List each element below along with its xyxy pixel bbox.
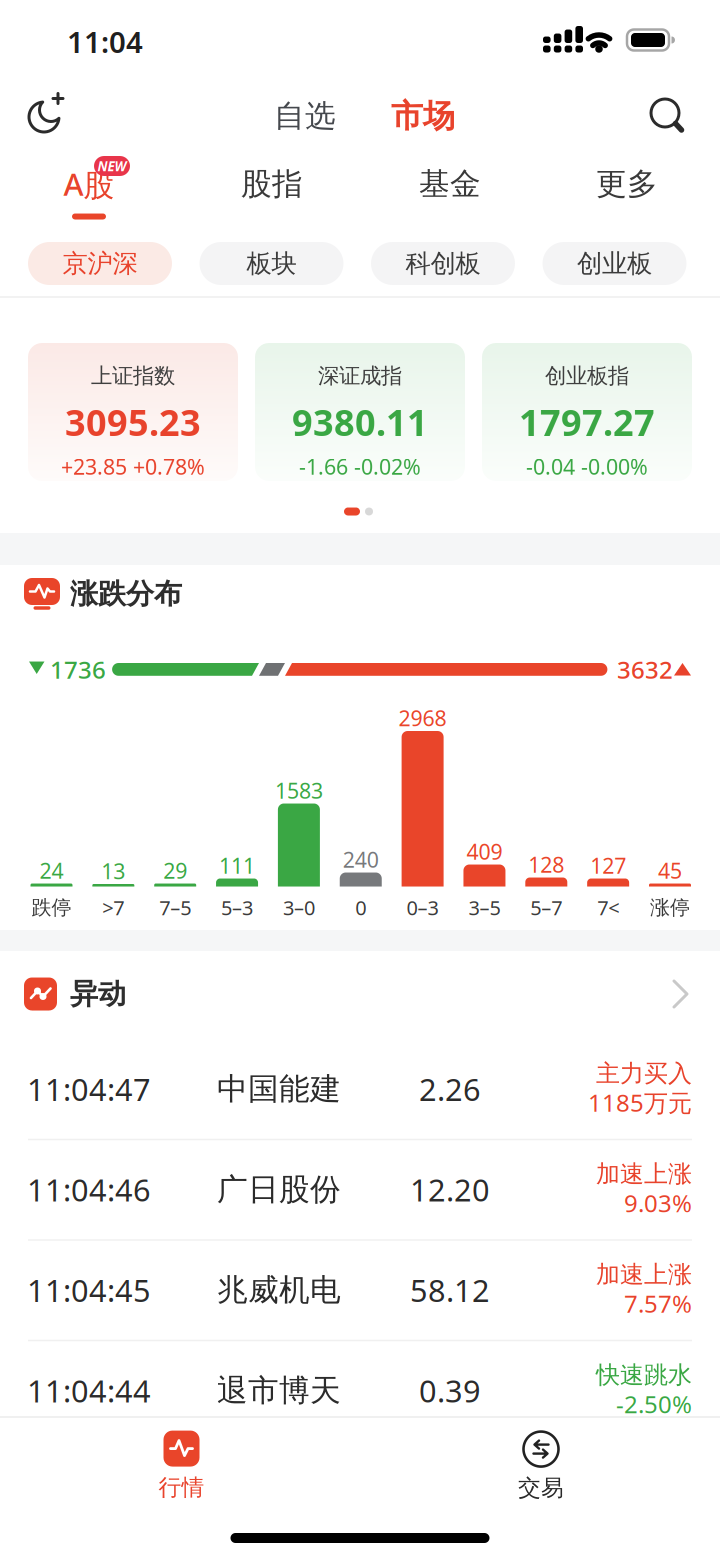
staticText: 11:04:47: [27, 1069, 151, 1109]
staticText: 中国能建: [217, 1070, 341, 1108]
staticText: -0.04 -0.00%: [526, 452, 648, 481]
staticText: 0: [355, 894, 366, 921]
button[interactable]: 京沪深: [28, 242, 172, 285]
button[interactable]: 上证指数: [28, 343, 238, 481]
staticText: 1797.27: [519, 398, 655, 446]
button[interactable]: 基金: [413, 159, 487, 209]
staticText: 240: [343, 845, 379, 874]
staticText: 3–0: [283, 894, 315, 921]
button[interactable]: 行情: [121, 1424, 241, 1508]
staticText: 3095.23: [65, 398, 201, 446]
staticText: 退市博天: [217, 1372, 341, 1409]
staticText: 7–5: [159, 894, 191, 921]
staticText: 12.20: [410, 1169, 490, 1210]
staticText: >7: [102, 894, 124, 921]
button[interactable]: A股: [57, 158, 120, 210]
staticText: 1583: [275, 776, 323, 805]
staticText: 基金: [419, 165, 481, 203]
button[interactable]: [643, 91, 691, 139]
staticText: 3632: [617, 654, 673, 685]
staticText: 11:04: [67, 22, 143, 61]
staticText: 加速上涨: [596, 1159, 692, 1189]
staticText: 主力买入: [596, 1059, 692, 1088]
staticText: 京沪深: [62, 248, 137, 279]
staticText: NEW: [97, 157, 126, 175]
staticText: +23.85 +0.78%: [61, 452, 205, 481]
staticText: 0.39: [419, 1370, 481, 1411]
staticText: -1.66 -0.02%: [299, 452, 421, 481]
staticText: 11:04:44: [27, 1370, 151, 1411]
button[interactable]: 创业板指: [482, 343, 692, 481]
staticText: 2.26: [419, 1069, 481, 1109]
staticText: 自选: [274, 97, 336, 135]
staticText: 5–3: [221, 894, 253, 921]
staticText: 科创板: [405, 248, 480, 279]
staticText: 兆威机电: [217, 1271, 341, 1309]
button[interactable]: 11:04:46: [0, 1139, 720, 1239]
staticText: 1185万元: [588, 1087, 692, 1118]
staticText: 127: [590, 851, 626, 880]
staticText: 广日股份: [217, 1171, 341, 1208]
button[interactable]: 异动: [0, 954, 720, 1034]
staticText: 2968: [399, 704, 447, 732]
staticText: 45: [658, 856, 682, 885]
staticText: 加速上涨: [596, 1260, 692, 1289]
staticText: 7<: [597, 894, 619, 921]
button[interactable]: 11:04:45: [0, 1240, 720, 1340]
staticText: 11:04:46: [27, 1169, 151, 1210]
staticText: 跌停: [31, 895, 71, 920]
staticText: 深证成指: [318, 363, 402, 389]
staticText: -2.50%: [616, 1388, 692, 1420]
staticText: 0–3: [407, 894, 439, 921]
staticText: 上证指数: [91, 363, 175, 389]
button[interactable]: 市场: [383, 88, 463, 144]
staticText: 9.03%: [624, 1187, 692, 1219]
button[interactable]: 11:04:47: [0, 1039, 720, 1139]
staticText: 市场: [391, 96, 455, 136]
staticText: 更多: [596, 165, 658, 203]
staticText: 9380.11: [292, 398, 428, 446]
staticText: 1736: [50, 654, 106, 685]
staticText: 13: [101, 857, 125, 885]
button[interactable]: 板块: [199, 242, 343, 285]
staticText: 创业板指: [545, 363, 629, 389]
staticText: 涨停: [650, 895, 690, 920]
staticText: 58.12: [410, 1270, 490, 1310]
staticText: 111: [219, 851, 255, 880]
staticText: 板块: [246, 248, 296, 279]
staticText: 快速跳水: [596, 1360, 692, 1390]
button[interactable]: 11:04:44: [0, 1340, 720, 1440]
staticText: 创业板: [577, 248, 652, 279]
button[interactable]: 股指: [235, 159, 309, 209]
button[interactable]: 更多: [590, 159, 664, 209]
staticText: 异动: [70, 977, 126, 1011]
staticText: A股: [63, 164, 114, 204]
staticText: 5–7: [530, 894, 562, 921]
button[interactable]: 交易: [481, 1424, 601, 1508]
staticText: 交易: [518, 1474, 564, 1502]
button[interactable]: 自选: [266, 89, 344, 143]
staticText: 行情: [158, 1474, 204, 1501]
staticText: 409: [466, 837, 502, 866]
staticText: 3–5: [468, 894, 500, 921]
staticText: 29: [163, 856, 187, 885]
staticText: 7.57%: [624, 1288, 692, 1319]
staticText: 128: [528, 850, 564, 879]
button[interactable]: 创业板: [542, 242, 686, 285]
staticText: 11:04:45: [27, 1270, 151, 1310]
button[interactable]: 深证成指: [255, 343, 465, 481]
button[interactable]: [22, 91, 70, 139]
staticText: 24: [39, 856, 63, 885]
button[interactable]: 科创板: [371, 242, 515, 285]
staticText: 涨跌分布: [70, 577, 182, 611]
staticText: 股指: [241, 165, 303, 203]
